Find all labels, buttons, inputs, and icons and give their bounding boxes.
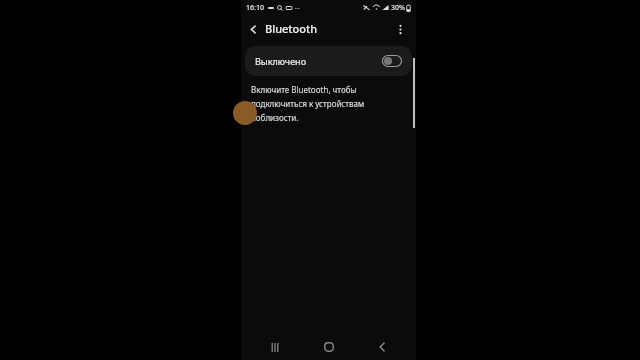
button[interactable]: Back — [241, 17, 265, 41]
button[interactable]: Recent apps — [255, 334, 295, 360]
staticText: подключиться к устройствам — [251, 98, 365, 109]
staticText: ··· — [295, 4, 300, 12]
button[interactable]: Home — [309, 334, 349, 360]
staticText: Выключено — [255, 55, 306, 67]
button[interactable]: Выключено — [245, 46, 412, 76]
staticText: Bluetooth — [265, 21, 318, 36]
staticText: 30% — [391, 3, 405, 13]
staticText: 16:10 — [246, 3, 264, 13]
button[interactable]: More options — [388, 17, 412, 41]
staticText: Включите Bluetooth, чтобы — [251, 84, 357, 95]
button[interactable]: Back — [362, 334, 402, 360]
staticText: поблизости. — [251, 112, 299, 123]
